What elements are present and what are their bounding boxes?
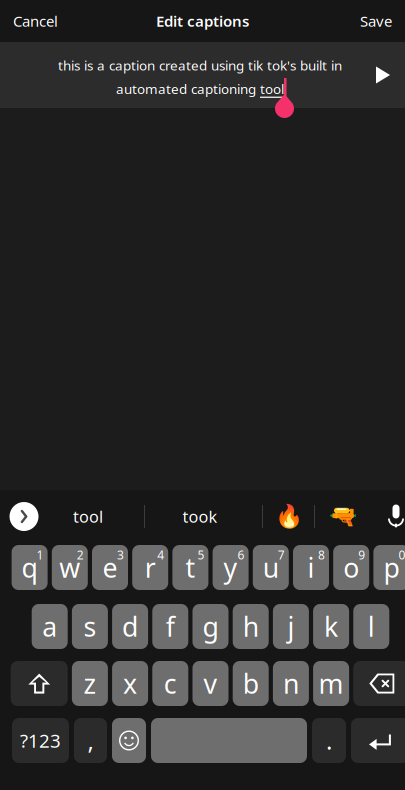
button[interactable]: More suggestions (0, 490, 48, 543)
staticText: . (326, 725, 332, 756)
staticText: this is a caption created using tik tok'… (58, 56, 342, 74)
button[interactable]: l (353, 604, 389, 649)
staticText: automated captioning (116, 79, 256, 98)
button[interactable]: q (12, 545, 48, 590)
button[interactable]: Fire emoji (263, 490, 314, 543)
staticText: Edit captions (156, 11, 249, 31)
button[interactable]: n (273, 661, 309, 706)
staticText: 1 (37, 547, 44, 563)
staticText: e (102, 550, 117, 585)
button[interactable]: Save (352, 0, 405, 42)
button[interactable]: s (72, 604, 108, 649)
button[interactable]: y (213, 545, 249, 590)
staticText: l (368, 609, 375, 644)
staticText: h (243, 609, 259, 644)
button[interactable]: ?123 (12, 718, 69, 763)
staticText: n (283, 666, 299, 701)
staticText: 0 (398, 547, 405, 563)
button[interactable]: o (333, 545, 369, 590)
button[interactable]: j (273, 604, 309, 649)
staticText: 6 (238, 547, 245, 563)
button[interactable]: tool (48, 490, 144, 543)
button[interactable]: , (74, 718, 107, 763)
button[interactable]: u (253, 545, 289, 590)
button[interactable]: v (192, 661, 228, 706)
staticText: 3 (117, 547, 124, 563)
button[interactable]: Play caption (361, 42, 405, 108)
button[interactable]: i (293, 545, 329, 590)
button[interactable]: Return (351, 718, 405, 763)
staticText: 9 (358, 547, 365, 563)
button[interactable]: z (72, 661, 108, 706)
staticText: t (185, 550, 195, 585)
staticText: tool (73, 505, 103, 528)
button[interactable]: b (233, 661, 269, 706)
staticText: y (224, 550, 238, 585)
staticText: q (22, 550, 38, 585)
staticText: f (166, 609, 175, 644)
button[interactable]: Dictate (371, 490, 405, 543)
button[interactable]: Backspace (353, 661, 405, 706)
staticText: m (319, 666, 344, 701)
staticText: 4 (157, 547, 164, 563)
staticText: Save (360, 11, 392, 31)
staticText: v (203, 666, 217, 701)
staticText: took (182, 505, 217, 528)
staticText: 2 (77, 547, 84, 563)
staticText: w (59, 550, 80, 585)
button[interactable]: Emoji (112, 718, 146, 763)
staticText: 🔥 (274, 504, 302, 529)
staticText: tool (260, 79, 284, 98)
button[interactable]: c (152, 661, 188, 706)
staticText: 8 (318, 547, 325, 563)
staticText: ?123 (20, 728, 61, 753)
staticText: 🔫 (329, 504, 357, 529)
button[interactable]: t (172, 545, 208, 590)
staticText: r (145, 550, 156, 585)
button[interactable]: p (373, 545, 405, 590)
staticText: , (87, 725, 93, 756)
staticText: j (287, 609, 294, 644)
button[interactable]: m (313, 661, 349, 706)
staticText: z (83, 666, 96, 701)
staticText: x (123, 666, 137, 701)
button[interactable]: x (112, 661, 148, 706)
button[interactable]: . (312, 718, 346, 763)
button[interactable]: a (32, 604, 68, 649)
button[interactable] (151, 718, 307, 763)
staticText: p (383, 550, 399, 585)
button[interactable]: Cancel (0, 0, 66, 42)
button[interactable]: e (92, 545, 128, 590)
button[interactable]: f (152, 604, 188, 649)
button[interactable]: took (145, 490, 262, 543)
staticText: k (324, 609, 338, 644)
staticText: b (243, 666, 259, 701)
button[interactable]: h (233, 604, 269, 649)
staticText: d (122, 609, 138, 644)
staticText: a (42, 609, 57, 644)
staticText: c (164, 666, 177, 701)
staticText: 5 (197, 547, 204, 563)
button[interactable]: d (112, 604, 148, 649)
button[interactable]: r (132, 545, 168, 590)
staticText: i (307, 550, 314, 585)
staticText: 7 (278, 547, 285, 563)
staticText: Cancel (13, 11, 58, 31)
button[interactable]: g (192, 604, 228, 649)
button[interactable]: Shift (11, 661, 68, 706)
button[interactable]: w (52, 545, 88, 590)
button[interactable]: k (313, 604, 349, 649)
staticText: g (202, 609, 218, 644)
staticText: u (263, 550, 279, 585)
staticText: s (83, 609, 96, 644)
button[interactable]: Water pistol emoji (315, 490, 371, 543)
staticText: o (343, 550, 359, 585)
